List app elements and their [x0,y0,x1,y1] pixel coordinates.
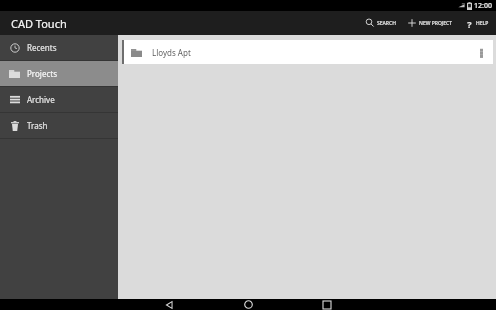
staticText: CAD Touch [11,16,67,31]
staticText: Archive [27,94,55,105]
button[interactable]: More options [471,40,491,64]
button[interactable]: Back [160,299,178,310]
staticText: HELP [476,20,489,27]
staticText: ? [467,18,472,28]
staticText: Trash [27,120,48,131]
button[interactable]: Recent apps [318,299,336,310]
staticText: SEARCH [377,20,396,27]
button[interactable]: Projects [0,61,118,86]
button[interactable]: Help [463,16,490,30]
staticText: Recents [27,42,57,53]
button[interactable]: Archive [0,87,118,112]
other: Search [365,18,375,28]
button[interactable]: Lloyds Apt [122,40,493,64]
other: Help [464,18,474,28]
button[interactable]: Recents [0,35,118,60]
button[interactable]: Home [239,299,257,310]
button[interactable]: Search [364,16,397,30]
staticText: 12:00 [474,1,492,11]
staticText: Projects [27,68,57,79]
staticText: NEW PROJECT [419,20,453,27]
button[interactable]: Trash [0,113,118,138]
button[interactable]: New project [406,16,454,30]
other: New project [407,18,417,28]
staticText: Lloyds Apt [152,47,191,58]
